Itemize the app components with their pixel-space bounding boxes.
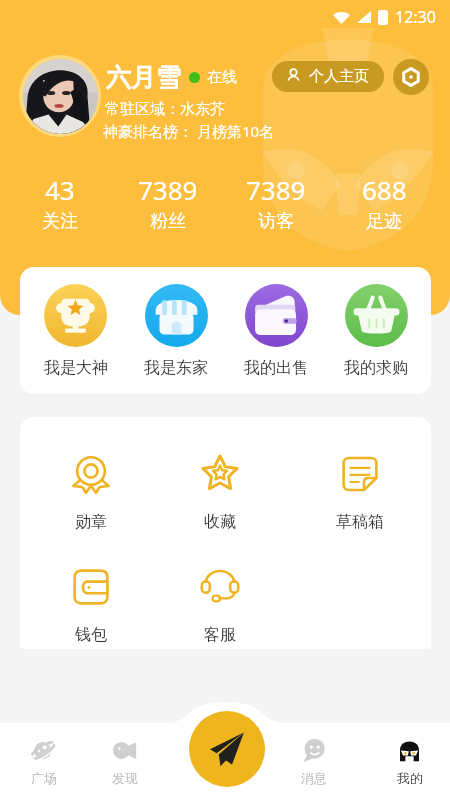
button[interactable]: 43	[6, 172, 114, 233]
staticText: 六月雪	[106, 62, 181, 93]
staticText: 在线	[207, 68, 237, 87]
staticText: 收藏	[204, 512, 236, 532]
staticText: 688	[362, 172, 407, 207]
button[interactable]: 688	[330, 172, 438, 233]
staticText: 我的	[397, 770, 423, 786]
button[interactable]: Post	[189, 711, 265, 787]
staticText: 草稿箱	[336, 512, 384, 532]
staticText: 广场	[31, 770, 57, 786]
button[interactable]: 7389	[222, 172, 330, 233]
button[interactable]: 7389	[114, 172, 222, 233]
staticText: 个人主页	[309, 67, 369, 86]
staticText: 消息	[301, 770, 327, 786]
staticText: 神豪排名榜： 月榜第10名	[103, 121, 275, 141]
staticText: 常驻区域：水东芥	[105, 100, 225, 119]
staticText: 我是大神	[44, 358, 108, 378]
staticText: 我的出售	[244, 358, 308, 378]
button[interactable]: 收藏	[190, 454, 250, 532]
staticText: 勋章	[75, 512, 107, 532]
staticText: 粉丝	[150, 210, 186, 233]
button[interactable]: 个人主页	[272, 61, 384, 92]
button[interactable]: 钱包	[61, 567, 121, 645]
staticText: 我的求购	[344, 358, 408, 378]
button[interactable]: 我是大神	[25, 284, 126, 378]
staticText: 12:30	[395, 6, 436, 28]
button[interactable]: 勋章	[61, 454, 121, 532]
staticText: 客服	[204, 625, 236, 645]
button[interactable]: Settings	[393, 59, 429, 95]
button[interactable]: 广场	[18, 738, 69, 786]
button[interactable]: 客服	[190, 567, 250, 645]
button[interactable]: 我的求购	[326, 284, 426, 378]
button[interactable]: 消息	[288, 738, 339, 786]
staticText: 发现	[112, 770, 138, 786]
staticText: 43	[45, 172, 75, 207]
staticText: 我是东家	[144, 358, 208, 378]
staticText: 7389	[138, 172, 198, 207]
staticText: 7389	[246, 172, 306, 207]
button[interactable]: 我的出售	[226, 284, 326, 378]
button[interactable]: Avatar	[19, 55, 101, 137]
staticText: 关注	[42, 210, 78, 233]
staticText: 访客	[258, 210, 294, 233]
button[interactable]: 我是东家	[126, 284, 226, 378]
staticText: 足迹	[366, 210, 402, 233]
staticText: 钱包	[75, 625, 107, 645]
button[interactable]: 我的	[384, 738, 435, 786]
button[interactable]: 草稿箱	[330, 454, 390, 532]
button[interactable]: 发现	[99, 738, 150, 786]
